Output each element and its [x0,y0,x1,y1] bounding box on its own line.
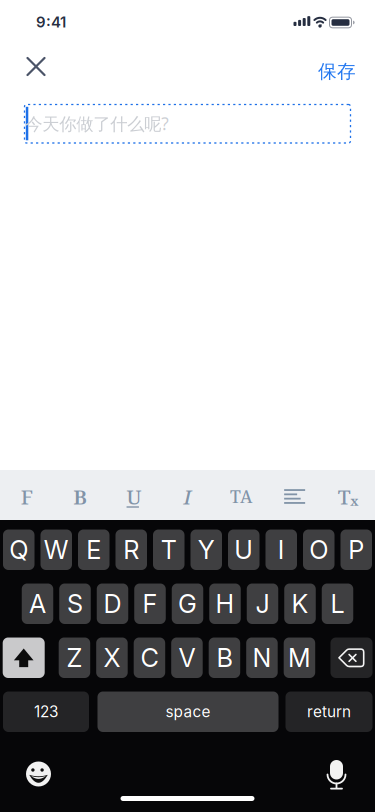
button[interactable]: B [209,637,240,678]
staticText: B [216,642,232,673]
button[interactable]: T [153,529,184,570]
staticText: E [86,534,101,565]
staticText: D [103,588,121,619]
staticText: F [142,588,157,619]
staticText: O [309,534,328,565]
staticText: TA [230,485,252,508]
staticText: S [67,588,83,619]
staticText: K [291,588,308,619]
staticText: I [278,534,285,565]
button[interactable]: 对齐 [268,470,321,520]
button[interactable]: A [22,583,53,624]
button[interactable]: 关闭 [14,44,58,88]
button[interactable]: F [134,583,166,624]
staticText: x [350,492,358,510]
button[interactable]: Y [190,529,222,570]
staticText: T [161,534,177,565]
button[interactable]: 斜体 I [161,470,214,520]
staticText: 今天你做了什么呢? [25,112,169,135]
staticText: H [215,588,234,619]
button[interactable]: 加粗 B [54,470,107,520]
staticText: U [234,534,253,565]
button[interactable]: 表情 [26,761,51,786]
button[interactable]: C [134,637,165,678]
staticText: G [178,588,197,619]
button[interactable]: I [265,529,297,570]
button[interactable]: 听写 [327,760,345,790]
button[interactable]: return [285,691,372,732]
button[interactable]: 清除格式 Tx [321,470,375,520]
button[interactable]: P [340,529,372,570]
staticText: U [126,482,141,510]
staticText: V [178,642,195,673]
staticText: B [73,482,87,510]
staticText: X [103,642,120,673]
button[interactable]: H [209,583,241,624]
button[interactable]: space [97,691,278,732]
button[interactable]: 下划线 U [107,470,161,520]
staticText: F [21,482,33,510]
staticText: A [29,588,46,619]
staticText: W [44,534,69,565]
button[interactable]: V [171,637,203,678]
staticText: R [123,534,139,565]
staticText: Q [9,534,28,565]
button[interactable]: N [246,637,278,678]
staticText: 123 [34,702,58,721]
button[interactable]: 字号 TA [214,470,268,520]
button[interactable]: U [228,529,259,570]
button[interactable]: R [115,529,147,570]
button[interactable]: G [172,583,203,624]
staticText: Z [66,642,82,673]
staticText: 保存 [318,60,356,83]
button[interactable]: K [284,583,316,624]
button[interactable]: M [284,637,315,678]
staticText: Y [198,534,215,565]
staticText: return [307,702,351,721]
button[interactable]: L [322,583,353,624]
staticText: C [140,642,158,673]
staticText: I [183,482,191,510]
button[interactable]: O [303,529,334,570]
button[interactable]: X [96,637,128,678]
staticText: N [252,642,271,673]
button[interactable]: 粗体 F [0,470,54,520]
button[interactable]: Q [3,529,34,570]
staticText: J [255,588,269,619]
staticText: space [165,702,210,721]
staticText: T [338,482,351,510]
staticText: L [330,588,344,619]
button[interactable]: 删除 [330,637,372,678]
button[interactable]: S [59,583,91,624]
button[interactable]: W [40,529,72,570]
button[interactable]: D [97,583,128,624]
button[interactable]: Shift [3,637,45,678]
button[interactable]: J [247,583,278,624]
staticText: P [348,534,364,565]
staticText: 9:41 [36,13,66,31]
button[interactable]: 123 [3,691,89,732]
button[interactable]: E [78,529,109,570]
staticText: M [288,642,311,673]
button[interactable]: 保存 [318,60,356,83]
button[interactable]: Z [59,637,90,678]
